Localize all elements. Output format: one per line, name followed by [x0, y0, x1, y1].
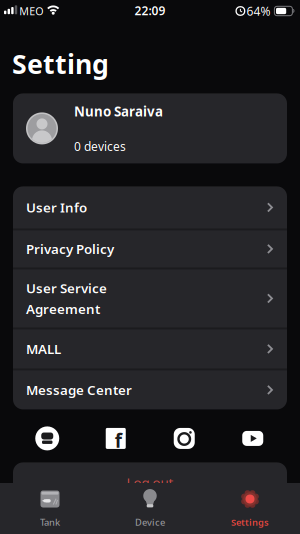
staticText: Nuno Saraiva [74, 103, 163, 120]
button[interactable]: Nuno Saraiva [13, 93, 287, 163]
button[interactable]: Privacy Policy [13, 230, 287, 267]
staticText: Privacy Policy [26, 240, 114, 258]
staticText: MALL [26, 340, 61, 358]
staticText: Tank [40, 516, 60, 528]
button[interactable]: Community [13, 426, 81, 450]
staticText: MEO [19, 4, 43, 18]
button[interactable]: User Info [13, 186, 287, 228]
staticText: User Info [26, 199, 87, 216]
staticText: Setting [12, 46, 109, 81]
staticText: Message Center [26, 381, 132, 399]
staticText: User Service Agreement [26, 279, 107, 318]
button[interactable]: Log out [13, 462, 287, 506]
staticText: f [115, 428, 122, 453]
button[interactable]: MALL [13, 329, 287, 368]
button[interactable]: Settings [200, 483, 300, 534]
button[interactable]: YouTube [218, 426, 287, 450]
button[interactable]: Facebook [81, 426, 150, 450]
button[interactable]: User Service Agreement [13, 269, 287, 327]
staticText: 22:09 [134, 2, 165, 18]
staticText: 64% [246, 3, 270, 19]
button[interactable]: Device [100, 483, 200, 534]
staticText: 0 devices [74, 138, 126, 154]
button[interactable]: Instagram [150, 426, 218, 450]
staticText: Device [135, 516, 165, 528]
staticText: Log out [126, 473, 173, 491]
button[interactable]: Tank [0, 483, 100, 534]
button[interactable]: Message Center [13, 370, 287, 409]
staticText: Settings [231, 516, 269, 528]
